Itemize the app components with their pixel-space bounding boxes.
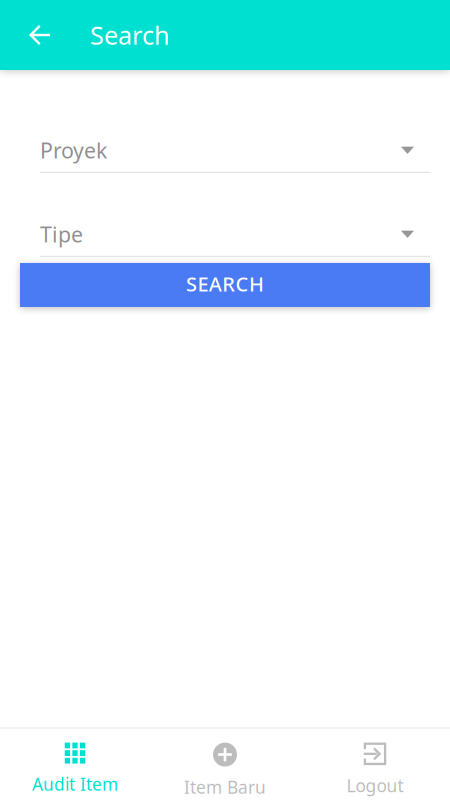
staticText: Item Baru [184, 776, 266, 799]
button[interactable]: Proyek [40, 132, 430, 173]
button[interactable]: Tipe [40, 216, 430, 257]
button[interactable]: Logout [300, 729, 450, 800]
staticText: Proyek [40, 136, 107, 164]
button[interactable]: Back [0, 0, 90, 70]
button[interactable]: Audit Item [0, 729, 150, 800]
staticText: Search [90, 18, 170, 52]
staticText: Logout [346, 774, 403, 797]
button[interactable]: SEARCH [20, 263, 430, 307]
button[interactable]: Item Baru [150, 729, 300, 800]
staticText: Audit Item [32, 773, 118, 796]
staticText: SEARCH [186, 270, 264, 297]
staticText: Tipe [40, 220, 83, 248]
